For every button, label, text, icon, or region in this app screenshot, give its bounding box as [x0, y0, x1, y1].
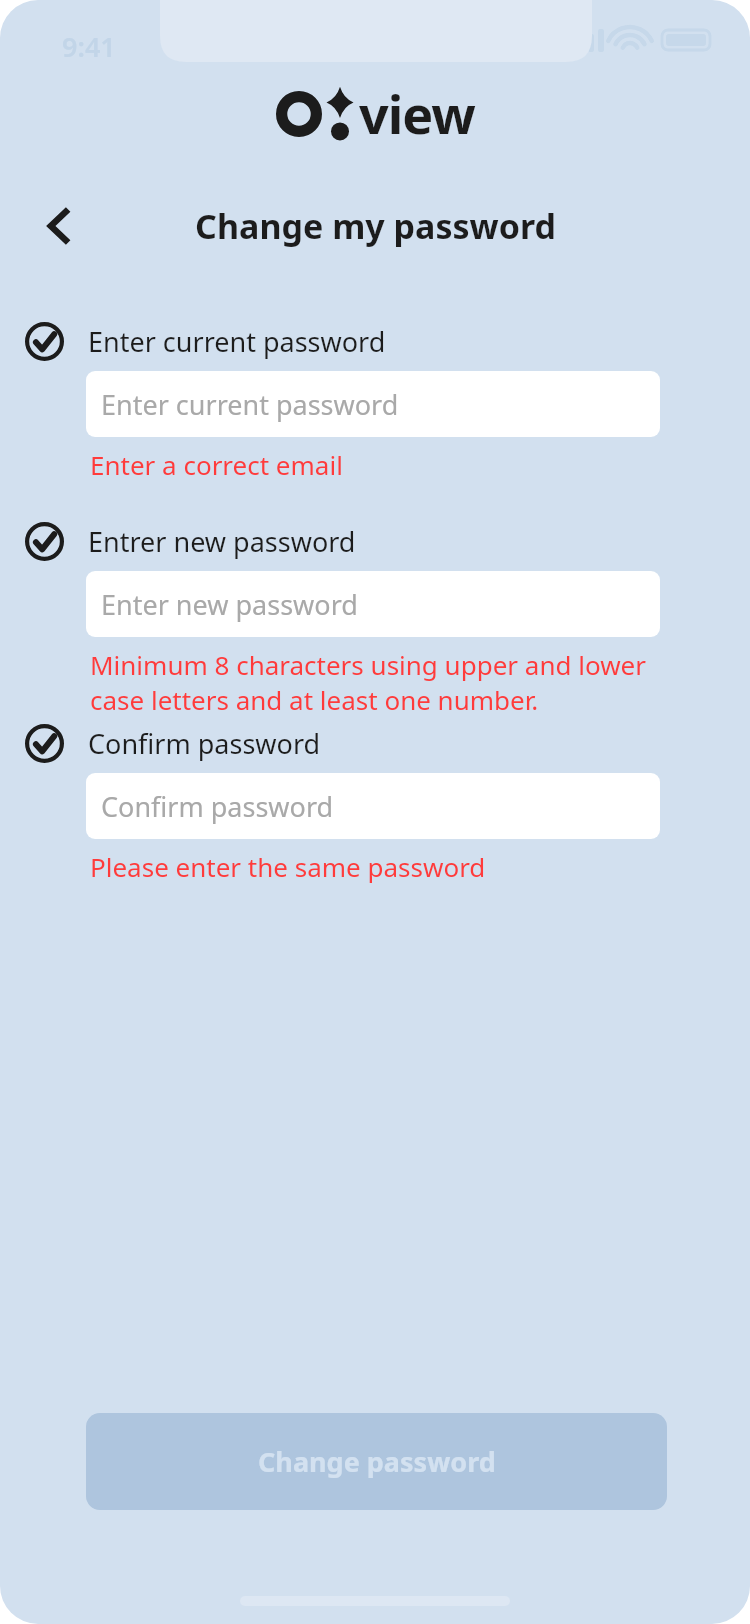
staticText: Enter new password	[101, 586, 358, 623]
staticText: Enter current password	[88, 323, 386, 360]
staticText: view	[359, 78, 475, 149]
staticText: 9:41	[62, 28, 116, 65]
staticText: Change my password	[195, 203, 556, 249]
staticText: Entrer new password	[88, 523, 356, 560]
staticText: case letters and at least one number.	[90, 682, 539, 717]
staticText: Minimum 8 characters using upper and low…	[90, 647, 646, 682]
staticText: Enter current password	[101, 386, 399, 423]
staticText: Please enter the same password	[90, 849, 486, 884]
button[interactable]: Enter new password	[86, 571, 660, 637]
staticText: Confirm password	[88, 725, 321, 762]
button[interactable]: Back	[28, 196, 90, 256]
staticText: Change password	[258, 1443, 496, 1480]
staticText: Confirm password	[101, 788, 334, 825]
button[interactable]: Change password	[86, 1413, 667, 1510]
button[interactable]: Confirm password	[86, 773, 660, 839]
staticText: Enter a correct email	[90, 447, 343, 482]
button[interactable]: Enter current password	[86, 371, 660, 437]
